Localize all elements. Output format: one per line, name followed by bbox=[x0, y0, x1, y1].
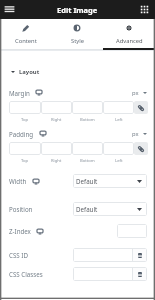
staticText: Position bbox=[9, 205, 33, 213]
staticText: Top bbox=[21, 158, 29, 164]
button[interactable] bbox=[103, 101, 134, 114]
staticText: Width bbox=[9, 177, 27, 185]
staticText: Bottom bbox=[80, 158, 95, 164]
staticText: Left bbox=[115, 158, 123, 164]
button[interactable] bbox=[9, 142, 41, 155]
staticText: CSS Classes bbox=[9, 270, 43, 278]
staticText: Left bbox=[115, 117, 123, 123]
staticText: px bbox=[132, 89, 139, 97]
button[interactable] bbox=[73, 248, 132, 262]
staticText: px bbox=[132, 130, 139, 138]
button[interactable] bbox=[73, 267, 132, 281]
button[interactable] bbox=[103, 142, 134, 155]
button[interactable] bbox=[72, 142, 103, 155]
button[interactable]: Content bbox=[0, 19, 51, 50]
button[interactable]: Default bbox=[73, 174, 147, 188]
staticText: Right bbox=[51, 158, 62, 164]
button[interactable]: px bbox=[132, 128, 147, 139]
button[interactable] bbox=[117, 224, 147, 238]
staticText: Default bbox=[76, 205, 98, 213]
button[interactable]: Default bbox=[73, 202, 147, 216]
button[interactable]: Dynamic tags bbox=[133, 248, 147, 262]
button[interactable]: Advanced bbox=[103, 19, 155, 50]
button[interactable]: Apps bbox=[138, 3, 151, 16]
staticText: Top bbox=[21, 117, 29, 123]
button[interactable]: Link values bbox=[134, 142, 148, 155]
button[interactable]: Dynamic tags bbox=[133, 267, 147, 281]
staticText: Advanced bbox=[116, 37, 143, 45]
button[interactable]: Style bbox=[51, 19, 103, 50]
staticText: Right bbox=[51, 117, 62, 123]
staticText: Padding bbox=[9, 130, 34, 138]
button[interactable] bbox=[41, 142, 72, 155]
button[interactable] bbox=[9, 101, 41, 114]
staticText: Bottom bbox=[80, 117, 95, 123]
button[interactable]: Menu bbox=[3, 3, 16, 16]
staticText: Default bbox=[76, 177, 98, 185]
button[interactable] bbox=[72, 101, 103, 114]
staticText: Style bbox=[71, 37, 84, 45]
staticText: Margin bbox=[9, 89, 30, 97]
staticText: Layout bbox=[19, 68, 40, 76]
staticText: Content bbox=[15, 37, 37, 45]
button[interactable]: Link values bbox=[134, 101, 148, 114]
staticText: Z-Index bbox=[9, 227, 31, 235]
button[interactable]: Layout bbox=[11, 68, 40, 76]
button[interactable]: px bbox=[132, 87, 147, 98]
staticText: Edit Image bbox=[57, 5, 98, 15]
staticText: CSS ID bbox=[9, 251, 28, 259]
button[interactable] bbox=[41, 101, 72, 114]
